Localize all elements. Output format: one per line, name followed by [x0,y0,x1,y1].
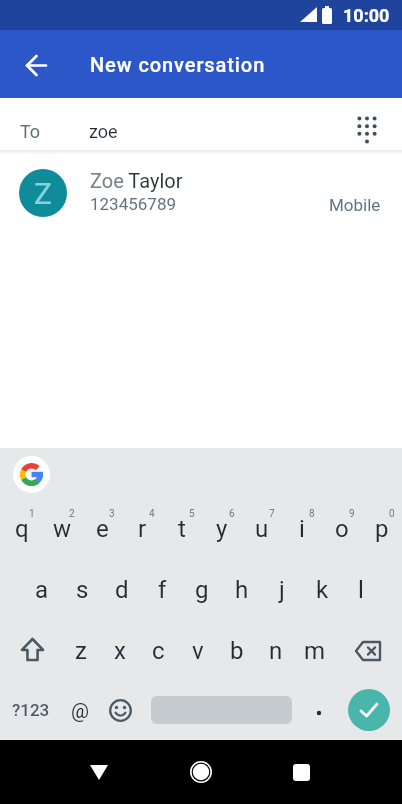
button[interactable]: z [61,618,100,679]
staticText: 0 [389,508,395,520]
staticText: 4 [149,508,155,520]
staticText: @ [71,699,89,722]
staticText: v [192,637,204,665]
button[interactable]: m [295,618,334,679]
staticText: 2 [69,508,75,520]
button[interactable]: k [302,557,342,618]
staticText: q [15,515,29,543]
staticText: Z [34,176,52,211]
staticText: m [304,637,326,665]
button[interactable]: p [362,496,402,557]
button[interactable]: d [102,557,142,618]
button[interactable]: u [242,496,282,557]
staticText: x [114,637,126,665]
button[interactable] [277,748,325,796]
staticText: 5 [189,508,195,520]
staticText: Zoe Taylor [90,169,183,192]
staticText: 1 [29,508,35,520]
button[interactable]: h [222,557,262,618]
staticText: 123456789 [90,194,176,214]
staticText: g [195,576,209,604]
staticText: o [335,515,349,543]
button[interactable]: ?123 [2,682,59,738]
staticText: h [235,576,249,604]
staticText: j [279,576,285,604]
staticText: ?123 [12,700,50,720]
staticText: t [178,515,186,543]
staticText: To [20,121,41,142]
staticText: 3 [109,508,115,520]
staticText: 9 [349,508,355,520]
staticText: l [358,576,364,604]
staticText: New conversation [90,53,266,76]
staticText: b [230,637,244,665]
button[interactable]: g [182,557,222,618]
button[interactable]: c [139,618,178,679]
staticText: u [255,515,269,543]
staticText: d [115,576,129,604]
staticText: r [138,515,147,543]
button[interactable]: t [162,496,202,557]
button[interactable]: s [62,557,102,618]
button[interactable] [302,693,335,726]
button[interactable] [177,748,225,796]
staticText: y [216,515,228,543]
button[interactable] [348,689,390,731]
staticText: Mobile [329,195,381,215]
staticText: n [269,637,283,665]
button[interactable]: j [262,557,302,618]
staticText: c [152,637,165,665]
staticText: s [76,576,89,604]
button[interactable]: @ [61,682,99,738]
button[interactable]: n [256,618,295,679]
staticText: e [96,515,109,543]
staticText: 6 [229,508,235,520]
button[interactable]: r [122,496,162,557]
button[interactable]: i [282,496,322,557]
button[interactable] [12,40,60,88]
staticText: w [53,515,72,543]
button[interactable] [347,110,387,150]
button[interactable] [344,625,392,673]
staticText: i [299,515,305,543]
button[interactable]: x [100,618,139,679]
button[interactable] [100,690,140,730]
staticText: 7 [269,508,275,520]
staticText: k [316,576,329,604]
button[interactable]: e [82,496,122,557]
button[interactable]: f [142,557,182,618]
button[interactable] [8,625,56,673]
button[interactable]: b [217,618,256,679]
staticText: 8 [309,508,315,520]
staticText: f [158,576,167,604]
staticText: 10:00 [343,5,390,26]
button[interactable]: q [2,496,42,557]
staticText: z [75,637,87,665]
staticText: zoe [89,121,118,142]
button[interactable]: y [202,496,242,557]
button[interactable] [75,748,123,796]
button[interactable]: Z [0,155,402,233]
button[interactable]: a [22,557,62,618]
button[interactable]: o [322,496,362,557]
staticText: p [375,515,389,543]
button[interactable] [13,456,50,493]
staticText: a [35,576,49,604]
button[interactable]: v [178,618,217,679]
button[interactable]: l [342,557,380,618]
button[interactable]: w [42,496,82,557]
